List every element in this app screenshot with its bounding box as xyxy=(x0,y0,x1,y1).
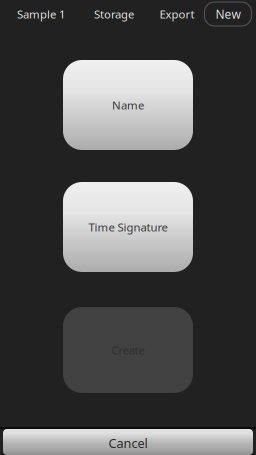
staticText: Export xyxy=(159,6,194,22)
button[interactable]: Create xyxy=(63,307,193,393)
button[interactable]: Time Signature xyxy=(63,182,193,272)
button[interactable]: Export xyxy=(151,2,202,26)
button[interactable]: Cancel xyxy=(0,429,256,455)
staticText: Time Signature xyxy=(88,219,167,235)
staticText: New xyxy=(215,6,240,22)
staticText: Storage xyxy=(94,6,134,22)
button[interactable]: Name xyxy=(63,60,193,150)
button[interactable]: Storage xyxy=(86,2,142,26)
button[interactable]: Sample 1 xyxy=(9,2,73,26)
staticText: Sample 1 xyxy=(17,6,65,22)
staticText: Cancel xyxy=(108,434,147,452)
staticText: Create xyxy=(111,342,144,358)
staticText: Name xyxy=(112,97,144,113)
button[interactable]: New xyxy=(204,2,251,26)
